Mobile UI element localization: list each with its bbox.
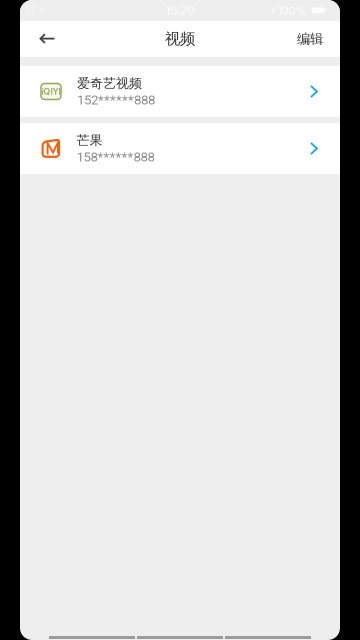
staticText: iQIYI <box>41 86 60 97</box>
button[interactable]: 编辑 <box>283 21 323 57</box>
button[interactable]: Back <box>29 21 64 57</box>
staticText: 芒果 <box>76 132 102 149</box>
staticText: 视频 <box>165 29 195 49</box>
button[interactable]: 芒果 <box>20 123 340 174</box>
staticText: 15:20 <box>165 3 194 17</box>
staticText: 爱奇艺视频 <box>77 75 142 92</box>
staticText: 152******888 <box>77 92 155 108</box>
staticText: 100% <box>278 4 306 17</box>
staticText: 编辑 <box>297 31 323 47</box>
button[interactable]: iQIYI <box>20 66 340 117</box>
staticText: 158******888 <box>76 149 154 165</box>
